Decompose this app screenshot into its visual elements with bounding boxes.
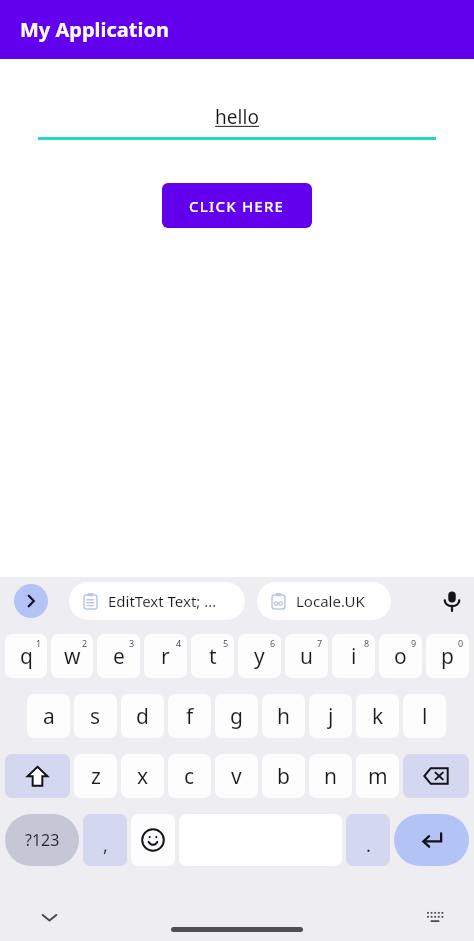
button[interactable]: l bbox=[403, 694, 446, 738]
staticText: hello bbox=[215, 104, 259, 130]
staticText: r bbox=[161, 642, 170, 671]
staticText: j bbox=[328, 702, 334, 731]
button[interactable]: Locale.UK bbox=[257, 582, 391, 620]
staticText: . bbox=[366, 833, 371, 858]
staticText: 1 bbox=[36, 637, 42, 649]
staticText: m bbox=[368, 762, 388, 791]
staticText: b bbox=[277, 762, 290, 791]
button[interactable]: m bbox=[356, 754, 399, 798]
staticText: c bbox=[184, 762, 195, 791]
staticText: g bbox=[230, 702, 243, 731]
button[interactable]: hello bbox=[38, 100, 436, 140]
staticText: k bbox=[372, 702, 384, 731]
staticText: 6 bbox=[270, 637, 276, 649]
staticText: l bbox=[422, 702, 428, 731]
staticText: o bbox=[394, 642, 407, 671]
button[interactable]: b bbox=[262, 754, 305, 798]
button[interactable]: EditText Text; … bbox=[69, 582, 245, 620]
button[interactable]: x bbox=[121, 754, 164, 798]
button[interactable]: c bbox=[168, 754, 211, 798]
staticText: e bbox=[113, 642, 125, 671]
staticText: , bbox=[103, 833, 108, 858]
staticText: f bbox=[186, 702, 194, 731]
button[interactable]: More suggestions bbox=[14, 584, 48, 618]
button[interactable]: Emoji bbox=[131, 814, 175, 866]
button[interactable]: f bbox=[168, 694, 211, 738]
staticText: n bbox=[324, 762, 337, 791]
button[interactable]: n bbox=[309, 754, 352, 798]
button[interactable]: j bbox=[309, 694, 352, 738]
staticText: Locale.UK bbox=[296, 591, 365, 611]
staticText: v bbox=[231, 762, 242, 791]
staticText: 5 bbox=[223, 637, 229, 649]
staticText: 7 bbox=[317, 637, 323, 649]
staticText: u bbox=[300, 642, 313, 671]
button[interactable]: t bbox=[191, 634, 234, 678]
button[interactable]: z bbox=[74, 754, 117, 798]
staticText: x bbox=[137, 762, 149, 791]
button[interactable]: Backspace bbox=[403, 754, 469, 798]
button[interactable]: , bbox=[83, 814, 127, 866]
staticText: y bbox=[254, 642, 265, 671]
staticText: t bbox=[209, 642, 217, 671]
staticText: h bbox=[277, 702, 290, 731]
staticText: w bbox=[64, 642, 81, 671]
button[interactable]: g bbox=[215, 694, 258, 738]
button[interactable]: Change keyboard bbox=[420, 902, 450, 932]
button[interactable]: d bbox=[121, 694, 164, 738]
staticText: i bbox=[351, 642, 357, 671]
button[interactable]: e bbox=[97, 634, 140, 678]
staticText: p bbox=[441, 642, 454, 671]
staticText: s bbox=[90, 702, 101, 731]
button[interactable]: r bbox=[144, 634, 187, 678]
button[interactable]: Enter bbox=[394, 814, 469, 866]
button[interactable]: CLICK HERE bbox=[162, 183, 312, 228]
button[interactable]: y bbox=[238, 634, 281, 678]
button[interactable]: s bbox=[74, 694, 117, 738]
button[interactable]: . bbox=[346, 814, 390, 866]
staticText: z bbox=[91, 762, 101, 791]
staticText: 2 bbox=[82, 637, 88, 649]
staticText: 0 bbox=[458, 637, 464, 649]
button[interactable]: k bbox=[356, 694, 399, 738]
staticText: 9 bbox=[411, 637, 417, 649]
staticText: 8 bbox=[364, 637, 370, 649]
button[interactable]: p bbox=[426, 634, 469, 678]
staticText: EditText Text; … bbox=[108, 591, 217, 611]
staticText: 3 bbox=[129, 637, 135, 649]
staticText: 4 bbox=[176, 637, 182, 649]
button[interactable]: q bbox=[5, 634, 47, 678]
staticText: d bbox=[136, 702, 149, 731]
button[interactable]: i bbox=[332, 634, 375, 678]
button[interactable]: Shift bbox=[5, 754, 70, 798]
button[interactable]: Hide keyboard bbox=[32, 900, 66, 934]
button[interactable]: w bbox=[51, 634, 93, 678]
button[interactable]: u bbox=[285, 634, 328, 678]
staticText: My Application bbox=[20, 16, 169, 43]
staticText: ?123 bbox=[25, 829, 60, 851]
button[interactable]: ?123 bbox=[5, 814, 79, 866]
button[interactable]: a bbox=[27, 694, 70, 738]
staticText: a bbox=[43, 702, 55, 731]
button[interactable]: h bbox=[262, 694, 305, 738]
staticText: CLICK HERE bbox=[189, 196, 285, 216]
button[interactable]: o bbox=[379, 634, 422, 678]
staticText: q bbox=[20, 642, 33, 671]
button[interactable]: Voice input bbox=[432, 581, 472, 621]
button[interactable]: v bbox=[215, 754, 258, 798]
